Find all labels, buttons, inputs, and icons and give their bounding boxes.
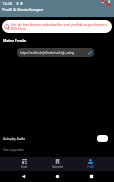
button[interactable]: Autoplay Audio (0, 132, 114, 145)
button[interactable]: Hol dir hier deinen individuellen und pe… (2, 20, 112, 33)
staticText: Gemerkt (52, 165, 63, 169)
staticText: Hol dir hier deinen individuellen und pe… (11, 22, 109, 31)
staticText: Über pepprdiwi (3, 148, 24, 152)
button[interactable]: Feed (7, 157, 41, 171)
button[interactable]: Gemerkt (41, 157, 74, 171)
staticText: 13:48 (2, 1, 13, 6)
other: Bearbeiten (88, 51, 92, 55)
staticText: Profil (87, 165, 94, 169)
staticText: Autoplay Audio (3, 137, 26, 141)
staticText: https://rss-file.de/p/feeds/rss/high_rat… (20, 51, 88, 55)
staticText: Profil & Einstellungen (2, 7, 44, 13)
staticText: Feed (21, 165, 27, 169)
button[interactable]: https://rss-file.de/p/feeds/rss/high_rat… (17, 48, 94, 57)
staticText: Meine Feeds: (3, 38, 27, 43)
button[interactable]: Profil (74, 157, 107, 171)
